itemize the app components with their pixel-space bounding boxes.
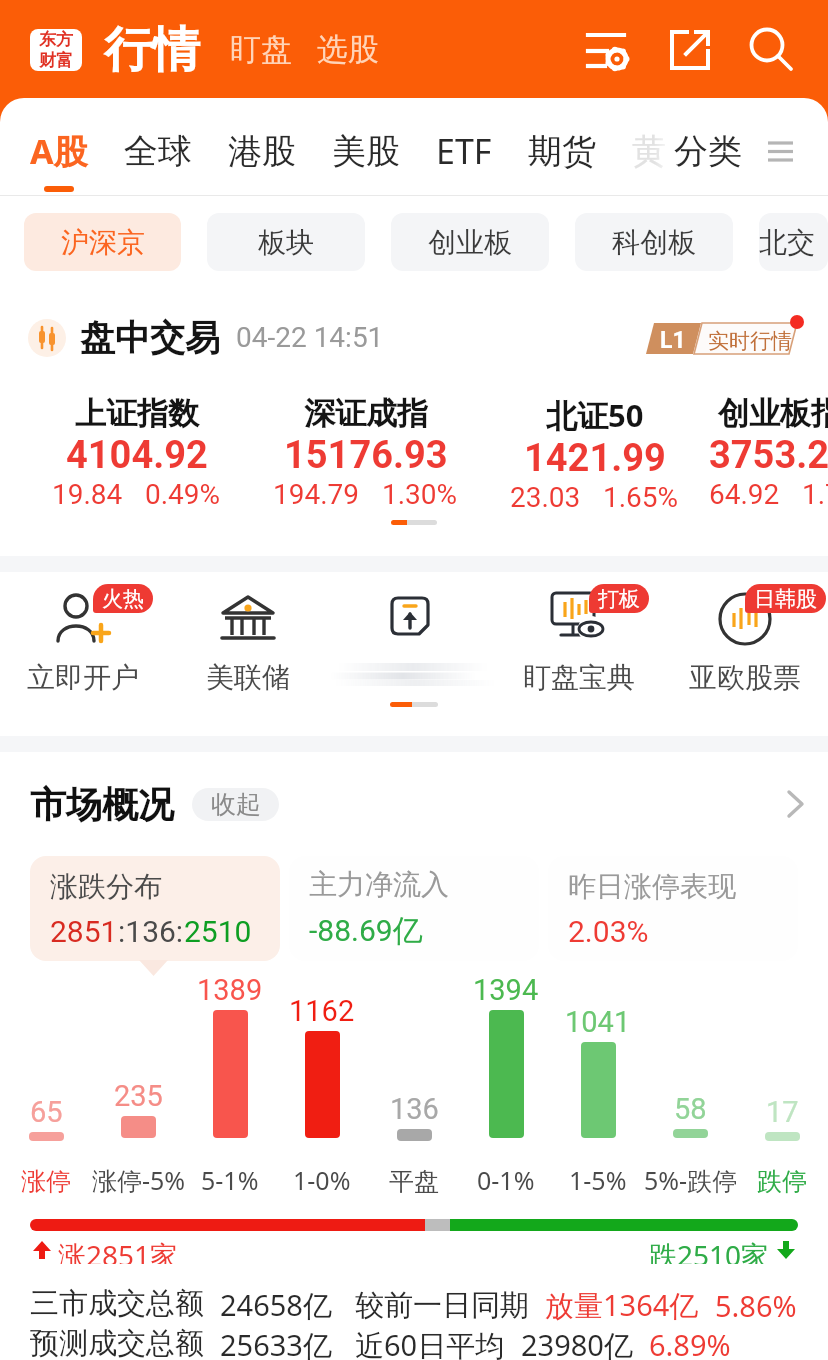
staticText: 235 (114, 1079, 163, 1113)
button[interactable]: 全球 (124, 122, 192, 196)
staticText: 19.84 (52, 478, 123, 511)
button[interactable]: 昨日涨停表现 (568, 856, 798, 961)
staticText: 三市成交总额 (30, 1285, 204, 1322)
staticText: 盘中交易 (80, 316, 220, 360)
staticText: 预测成交总额 (30, 1325, 204, 1360)
button[interactable]: 创业板 (391, 213, 549, 271)
staticText: 24658亿 (220, 1285, 332, 1325)
staticText: 涨2851家 (58, 1236, 179, 1264)
button[interactable]: 科创板 (575, 213, 733, 271)
button[interactable]: 美联储 (165, 584, 330, 702)
staticText: 科创板 (612, 225, 696, 260)
button[interactable]: 上证指数 (22, 387, 251, 520)
button[interactable]: 北证50 (480, 387, 709, 520)
staticText: 立即开户 (27, 660, 139, 695)
staticText: 市场概况 (30, 782, 174, 827)
button[interactable]: 盯盘 (230, 30, 292, 69)
button[interactable]: 打板 (496, 584, 662, 702)
staticText: 涨跌分布 (50, 869, 162, 904)
staticText: 1394 (473, 973, 539, 1007)
staticText: 1389 (197, 973, 263, 1007)
staticText: 日韩股 (754, 586, 817, 612)
button[interactable]: Search (742, 20, 802, 80)
staticText: 2510 (184, 914, 252, 949)
staticText: 打板 (598, 586, 640, 612)
staticText: 17 (766, 1095, 799, 1129)
button[interactable]: 期货 (528, 122, 596, 196)
staticText: 15176.93 (284, 433, 448, 478)
staticText: 跌2510家 (649, 1236, 770, 1264)
staticText: 涨停-5% (92, 1163, 184, 1197)
staticText: 04-22 14:51 (236, 321, 384, 354)
button[interactable]: Sort settings (578, 20, 638, 80)
staticText: 财富 (39, 50, 73, 71)
staticText: 5%-跌停 (644, 1163, 736, 1197)
button[interactable]: 北交所 (759, 213, 828, 271)
staticText: 1.65% (603, 481, 679, 514)
staticText: 收起 (211, 789, 261, 820)
staticText: 创业板指 (718, 394, 828, 433)
staticText: 上证指数 (75, 394, 199, 433)
button[interactable]: ETF (436, 122, 492, 196)
button[interactable]: 创业板指 (709, 387, 828, 520)
staticText: 港股 (228, 130, 296, 173)
button[interactable]: 火热 (0, 584, 165, 702)
button[interactable]: 分类 (674, 138, 742, 181)
staticText: 实时行情 (708, 328, 792, 354)
staticText: 涨停 (21, 1166, 71, 1197)
staticText: ETF (436, 128, 492, 174)
staticText: 65 (30, 1095, 63, 1129)
staticText: 昨日涨停表现 (568, 869, 736, 904)
button[interactable]: 板块 (207, 213, 365, 271)
staticText: 58 (674, 1092, 707, 1126)
staticText: 1421.99 (524, 436, 666, 481)
button[interactable]: 行情 (104, 20, 200, 80)
staticText: 沪深京 (61, 225, 145, 260)
button[interactable]: 港股 (228, 122, 296, 196)
staticText: 创业板 (428, 225, 512, 260)
button[interactable]: 美股 (332, 122, 400, 196)
staticText: 主力净流入 (309, 867, 449, 902)
staticText: 25633亿 (220, 1325, 332, 1360)
staticText: 火热 (102, 586, 144, 612)
staticText: 跌停 (757, 1166, 807, 1197)
staticText: 1.30% (382, 478, 458, 511)
staticText: 北证50 (546, 394, 644, 436)
button[interactable]: A股 (30, 122, 88, 196)
staticText: 4104.92 (66, 433, 208, 478)
button[interactable]: 选股 (317, 30, 379, 69)
staticText: 亚欧股票 (689, 660, 801, 695)
staticText: 东方 (39, 29, 73, 50)
staticText: 5-1% (201, 1163, 259, 1197)
staticText: L1 (660, 327, 686, 354)
button[interactable]: 主力净流入 (309, 856, 539, 961)
button[interactable]: 深证成指 (251, 387, 480, 520)
staticText: 23980亿 (521, 1325, 633, 1360)
staticText: 2851 (50, 914, 118, 949)
button[interactable]: All categories (768, 135, 793, 183)
button[interactable]: 市场概况 (30, 752, 804, 856)
staticText: 0.49% (145, 478, 221, 511)
staticText: 盯盘宝典 (523, 660, 635, 695)
button[interactable]: 涨跌分布 (50, 856, 280, 961)
staticText: 5.86% (715, 1286, 797, 1325)
staticText: 6.89% (649, 1325, 731, 1360)
staticText: 全球 (124, 130, 192, 173)
staticText: 放量1364亿 (545, 1285, 699, 1325)
staticText: 近60日平均 (355, 1325, 505, 1360)
staticText: :136: (118, 914, 184, 949)
button[interactable]: 收起 (192, 788, 279, 821)
button[interactable]: East Money logo (30, 29, 82, 71)
staticText: 平盘 (389, 1166, 439, 1197)
button[interactable]: Share (660, 20, 720, 80)
staticText: 深证成指 (304, 394, 428, 433)
button[interactable]: 沪深京 (24, 213, 181, 271)
button[interactable]: 日韩股 (662, 584, 828, 702)
staticText: -88.69亿 (309, 912, 423, 950)
staticText: 美股 (332, 130, 400, 173)
staticText: 194.79 (273, 478, 360, 511)
staticText: 板块 (258, 225, 314, 260)
staticText: 1041 (565, 1005, 631, 1039)
button[interactable] (330, 584, 496, 702)
staticText: 1.75% (802, 478, 828, 511)
